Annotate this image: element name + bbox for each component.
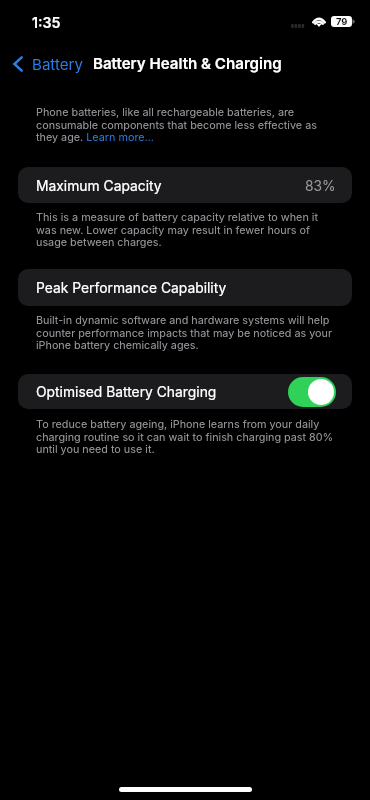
staticText: Peak Performance Capability xyxy=(36,280,227,297)
staticText: Phone batteries, like all rechargeable b… xyxy=(36,106,334,144)
button[interactable]: Optimised Battery Charging xyxy=(18,374,352,409)
staticText: 1:35 xyxy=(32,14,61,31)
staticText: Built-in dynamic software and hardware s… xyxy=(36,314,334,352)
button[interactable]: Optimised Battery Charging xyxy=(288,377,336,407)
staticText: To reduce battery ageing, iPhone learns … xyxy=(36,418,334,456)
staticText: 83% xyxy=(305,178,336,195)
staticText: This is a measure of battery capacity re… xyxy=(36,211,334,249)
staticText: Battery xyxy=(32,55,83,73)
staticText: 79 xyxy=(336,16,348,27)
staticText: Battery Health & Charging xyxy=(93,54,282,72)
button[interactable]: Maximum Capacity xyxy=(18,167,352,203)
staticText: Optimised Battery Charging xyxy=(36,384,217,401)
button[interactable]: Battery xyxy=(8,49,91,79)
staticText: Maximum Capacity xyxy=(36,178,162,195)
button[interactable]: Peak Performance Capability xyxy=(18,269,352,306)
